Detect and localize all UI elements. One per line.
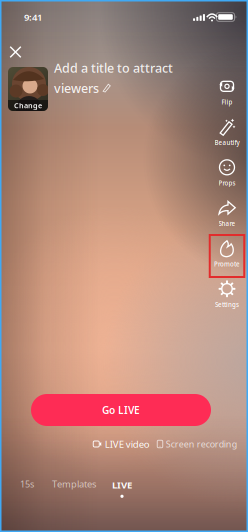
staticText: Templates [52, 478, 96, 490]
button[interactable]: Share [207, 197, 247, 229]
staticText: Promote [214, 260, 240, 268]
staticText: 9:41 [24, 10, 42, 24]
button[interactable]: LIVE [106, 474, 138, 498]
button[interactable]: 15s [14, 474, 40, 494]
button[interactable]: Close [3, 39, 28, 64]
button[interactable]: Change [8, 67, 48, 111]
button[interactable]: Templates [46, 474, 102, 494]
button[interactable]: Add a title to attract [54, 57, 178, 98]
staticText: 15s [20, 478, 34, 490]
button[interactable]: Screen recording [157, 438, 237, 450]
staticText: LIVE video [105, 437, 150, 451]
staticText: Change [14, 101, 42, 110]
button[interactable]: Props [207, 157, 247, 189]
button[interactable]: Settings [207, 278, 247, 310]
staticText: Flip [221, 98, 232, 106]
staticText: Settings [215, 300, 239, 309]
button[interactable]: LIVE video [93, 437, 150, 451]
staticText: Beautify [214, 138, 239, 147]
button[interactable]: Beautify [207, 116, 247, 148]
staticText: viewers [54, 79, 99, 97]
staticText: Go LIVE [102, 403, 140, 417]
staticText: LIVE [112, 478, 132, 491]
button[interactable]: Promote [207, 238, 247, 270]
button[interactable]: Go LIVE [31, 394, 211, 426]
staticText: Screen recording [166, 438, 237, 450]
staticText: Props [218, 179, 235, 187]
button[interactable]: Flip [207, 76, 247, 108]
staticText: Share [218, 219, 235, 228]
staticText: Add a title to attract [54, 59, 173, 76]
